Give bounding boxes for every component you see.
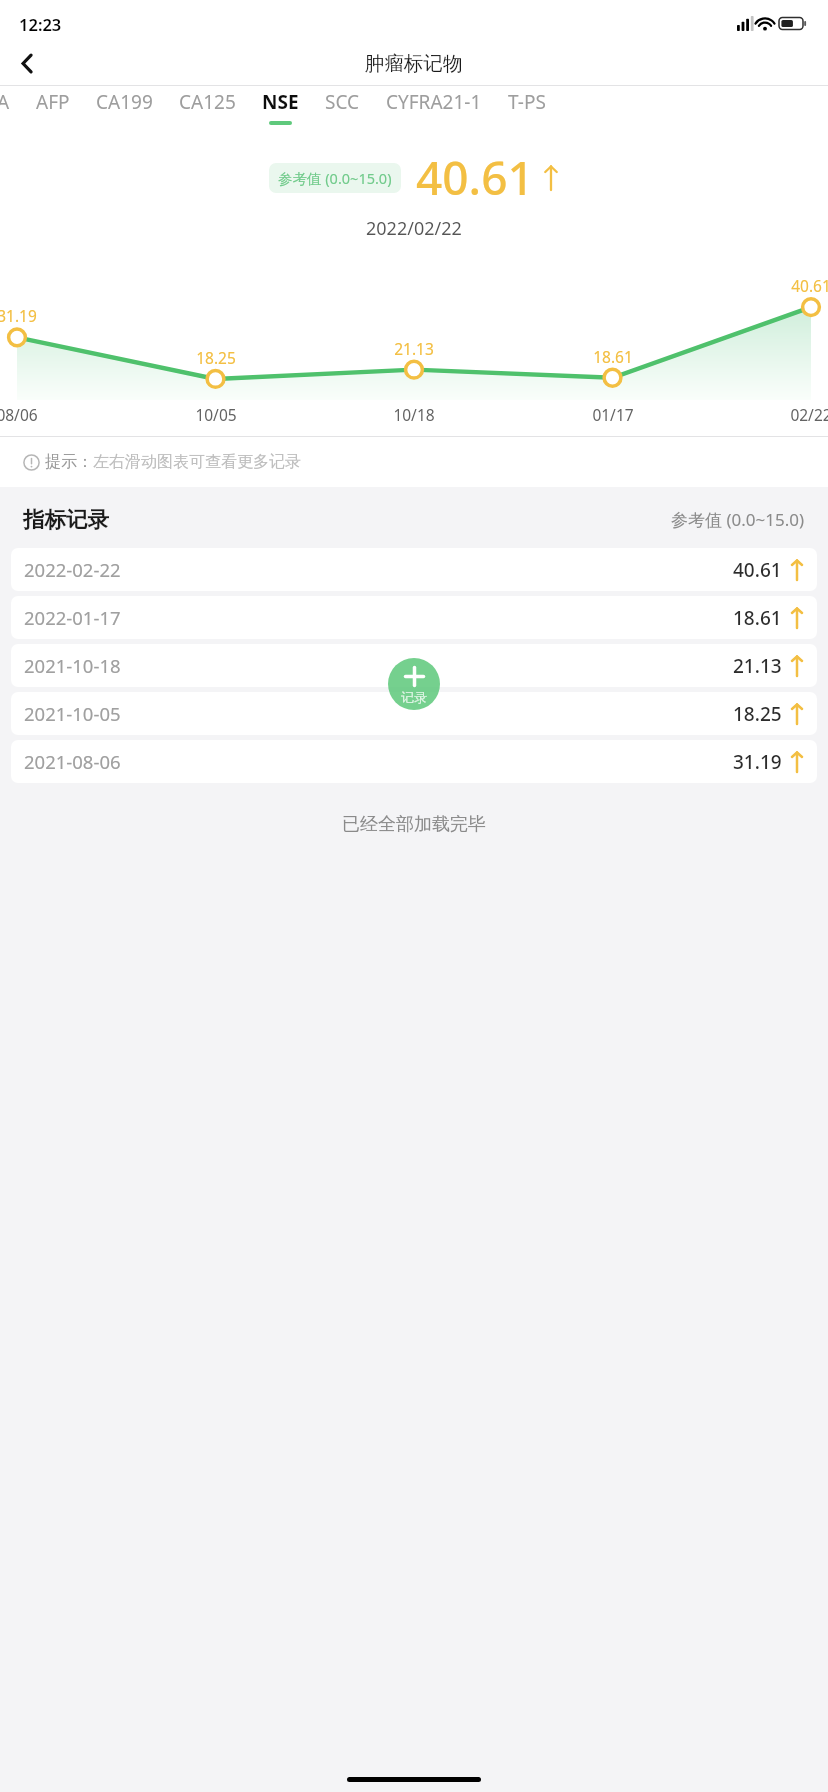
staticText: 2021-10-05 — [24, 701, 121, 726]
button[interactable]: 2021-10-18 — [11, 644, 817, 687]
staticText: CA199 — [96, 89, 153, 115]
button[interactable]: CYFRA21-1 — [373, 86, 495, 124]
button[interactable]: T-PS — [495, 86, 559, 124]
staticText: CYFRA21-1 — [386, 89, 482, 115]
staticText: A — [0, 89, 10, 115]
button[interactable]: SCC — [312, 86, 373, 124]
staticText: 肿瘤标记物 — [365, 51, 463, 76]
button[interactable]: 添加记录 — [388, 658, 440, 710]
button[interactable]: 2022-01-17 — [11, 596, 817, 639]
staticText: CA125 — [179, 89, 236, 115]
staticText: SCC — [325, 89, 360, 115]
staticText: 18.61 — [733, 605, 782, 631]
button[interactable]: CA125 — [166, 86, 249, 124]
button[interactable]: NSE — [249, 86, 312, 128]
staticText: 参考值 (0.0~15.0) — [278, 168, 392, 188]
button[interactable]: 2022-02-22 — [11, 548, 817, 591]
staticText: 18.61 — [585, 346, 641, 367]
staticText: AFP — [36, 89, 70, 115]
button[interactable]: 2021-08-06 — [11, 740, 817, 783]
staticText: 左右滑动图表可查看更多记录 — [93, 452, 301, 472]
staticText: 记录 — [401, 689, 427, 705]
staticText: 指标记录 — [23, 506, 109, 533]
staticText: 18.25 — [733, 701, 782, 727]
staticText: NSE — [262, 89, 299, 115]
staticText: 10/05 — [186, 404, 246, 425]
staticText: 2022/02/22 — [366, 216, 462, 241]
staticText: T-PS — [508, 89, 546, 115]
staticText: 31.19 — [733, 749, 782, 775]
staticText: 08/06 — [0, 404, 47, 425]
staticText: 02/22 — [781, 404, 828, 425]
staticText: 40.61 — [783, 275, 828, 296]
staticText: 40.61 — [733, 557, 782, 583]
staticText: 已经全部加载完毕 — [0, 813, 828, 836]
staticText: 21.13 — [733, 653, 782, 679]
staticText: 10/18 — [384, 404, 444, 425]
staticText: 12:23 — [19, 13, 62, 35]
staticText: 参考值 (0.0~15.0) — [671, 508, 805, 531]
button[interactable]: 2021-10-05 — [11, 692, 817, 735]
staticText: 2021-08-06 — [24, 749, 121, 774]
staticText: 2022-01-17 — [24, 605, 121, 630]
staticText: 提示： — [45, 452, 93, 472]
staticText: 2022-02-22 — [24, 557, 121, 582]
staticText: 31.19 — [0, 305, 45, 326]
staticText: 40.61 — [416, 146, 534, 209]
staticText: 21.13 — [386, 338, 442, 359]
button[interactable]: AFP — [23, 86, 83, 124]
button[interactable]: A — [0, 86, 23, 124]
button[interactable]: CA199 — [83, 86, 166, 124]
staticText: 01/17 — [583, 404, 643, 425]
staticText: 18.25 — [188, 347, 244, 368]
staticText: 2021-10-18 — [24, 653, 121, 678]
button[interactable]: 返回 — [0, 42, 54, 85]
